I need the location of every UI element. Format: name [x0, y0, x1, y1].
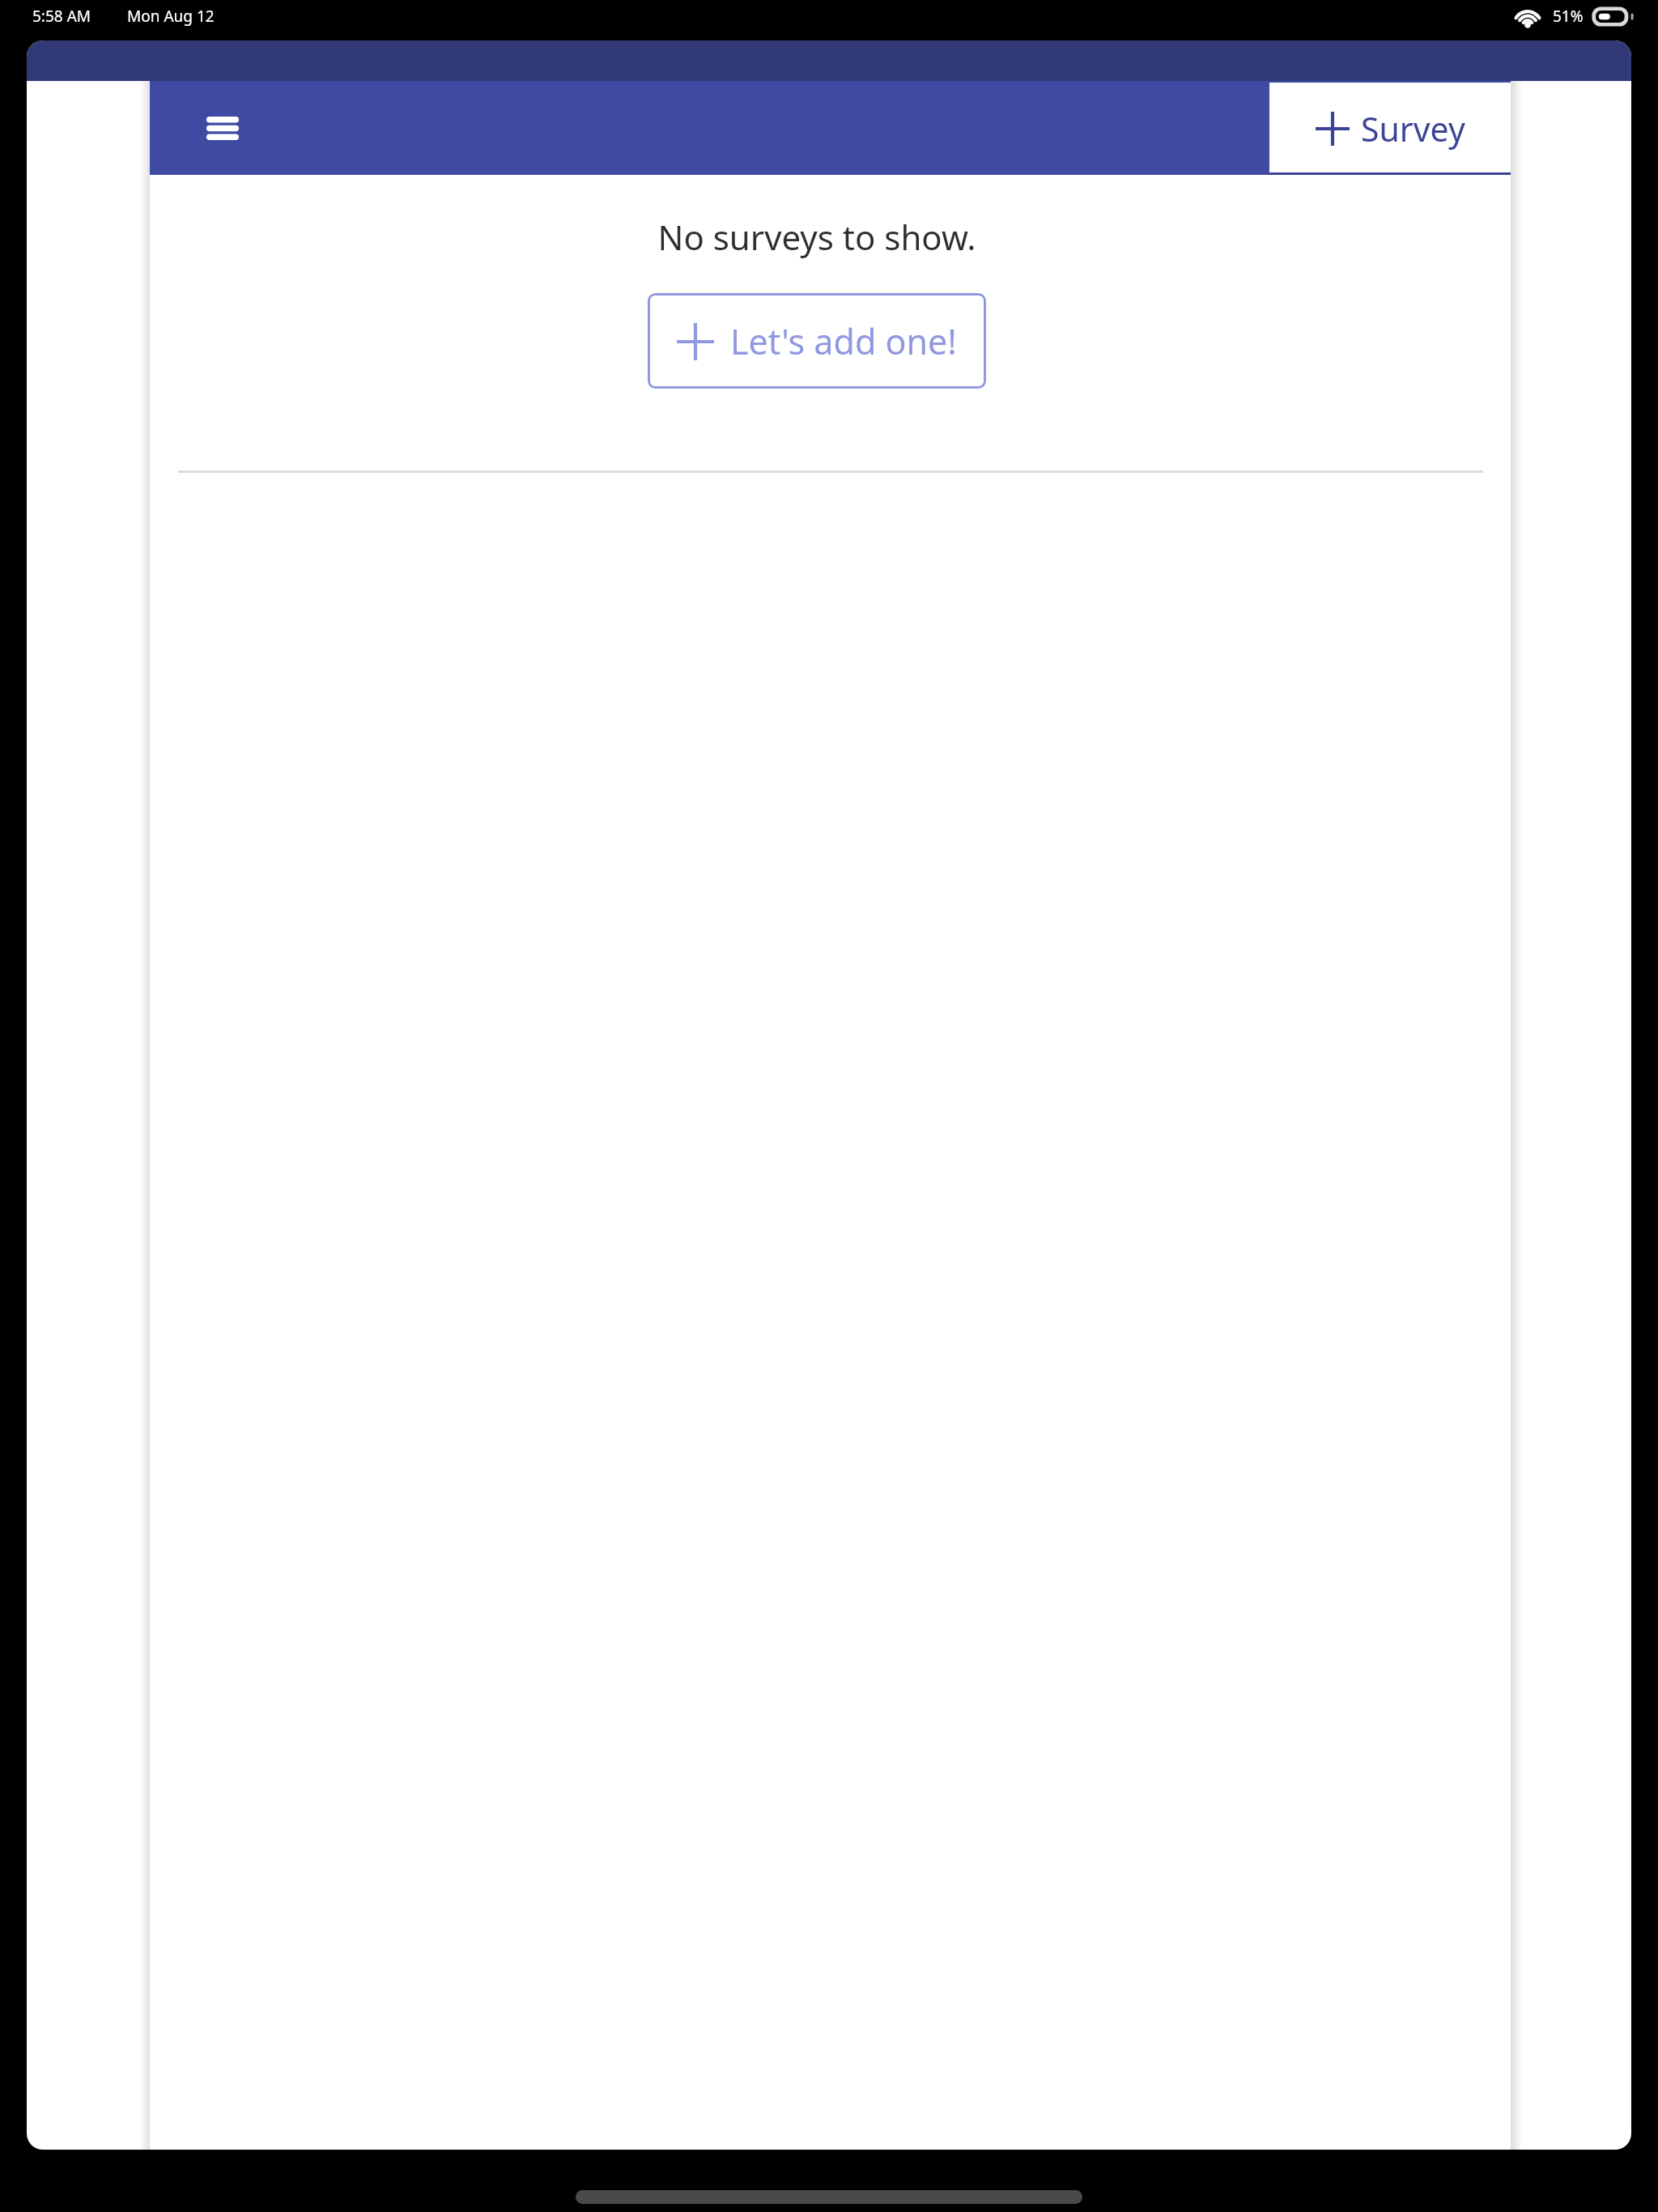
button[interactable]: Let's add one! — [648, 293, 986, 389]
staticText: Survey — [1361, 106, 1465, 151]
button[interactable]: Open navigation menu — [188, 93, 257, 163]
staticText: Let's add one! — [730, 317, 957, 365]
staticText: Mon Aug 12 — [127, 6, 215, 27]
staticText: 51% — [1553, 6, 1584, 27]
button[interactable]: Survey — [1269, 83, 1511, 175]
staticText: No surveys to show. — [657, 214, 976, 260]
staticText: 5:58 AM — [32, 6, 91, 27]
